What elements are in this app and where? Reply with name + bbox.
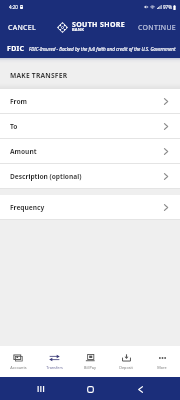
other: Accounts (13, 354, 24, 362)
button[interactable]: Accounts (0, 354, 36, 370)
button[interactable]: Recents (30, 379, 50, 399)
button[interactable]: Frequency (0, 195, 180, 219)
other: Bill Pay (85, 354, 96, 362)
staticText: To (10, 122, 164, 131)
staticText: 97% (163, 4, 172, 10)
staticText: CANCEL (8, 23, 37, 33)
staticText: FDIC (7, 44, 25, 54)
staticText: SOUTH SHORE (72, 20, 126, 30)
button[interactable]: Amount (0, 139, 180, 163)
staticText: BillPay (84, 365, 96, 370)
other: Deposit (121, 354, 132, 362)
staticText: 4:20 (9, 4, 18, 10)
button[interactable]: CONTINUE (133, 18, 180, 38)
staticText: Description (optional) (10, 172, 164, 181)
button[interactable]: To (0, 114, 180, 138)
button[interactable]: From (0, 89, 180, 113)
staticText: BANK (72, 27, 85, 32)
staticText: FDIC-Insured - Backed by the full faith … (29, 46, 176, 52)
other: Transfers (49, 354, 60, 362)
staticText: Transfers (46, 365, 63, 370)
staticText: More (157, 365, 167, 370)
staticText: MAKE TRANSFER (10, 71, 68, 80)
staticText: Frequency (10, 203, 164, 212)
button[interactable]: CANCEL (0, 18, 45, 38)
staticText: Accounts (10, 365, 27, 370)
button[interactable]: Home (80, 379, 100, 399)
staticText: Amount (10, 147, 164, 156)
button[interactable]: Bill Pay (72, 354, 108, 370)
staticText: Deposit (119, 365, 133, 370)
button[interactable]: More (144, 354, 180, 370)
button[interactable]: Description (optional) (0, 164, 180, 188)
button[interactable]: Deposit (108, 354, 144, 370)
button[interactable]: Transfers (36, 354, 72, 370)
other: More (157, 354, 168, 362)
staticText: CONTINUE (138, 23, 177, 33)
staticText: From (10, 97, 164, 106)
button[interactable]: Back (130, 379, 150, 399)
